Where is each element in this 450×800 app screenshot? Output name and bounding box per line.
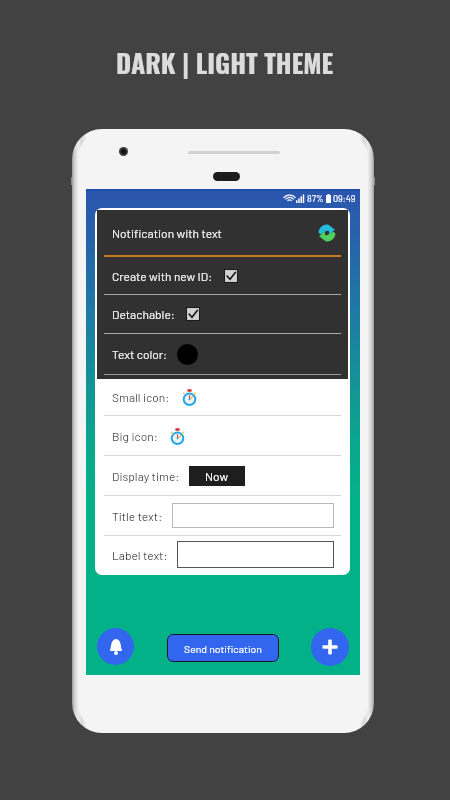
button[interactable]: Send notification [167,634,279,662]
staticText: Display time: [112,469,180,483]
staticText: 09:49 [333,193,356,204]
button[interactable]: Text color: [97,334,348,374]
button[interactable]: Small icon: [97,379,348,415]
staticText: Text color: [112,347,168,361]
button[interactable]: Pick big icon [167,426,187,446]
staticText: Send notification [184,642,262,655]
button[interactable]: Detachable: [97,295,348,333]
button[interactable]: Toggle [184,305,202,323]
button[interactable]: Display time: [97,456,348,495]
staticText: Detachable: [112,307,175,321]
button[interactable]: Pick small icon [179,387,199,407]
staticText: Now [205,469,229,483]
staticText: 87% [307,193,324,204]
button[interactable]: Create with new ID: [97,257,348,294]
staticText: Notification with text [112,226,222,240]
button[interactable]: Big icon: [97,416,348,455]
button[interactable]: Add [311,628,349,666]
button[interactable]: Label text: [97,536,348,573]
staticText: Small icon: [112,390,170,404]
button[interactable] [177,541,334,568]
staticText: Label text: [112,548,168,562]
button[interactable] [172,503,334,528]
staticText: DARK | LIGHT THEME [116,43,334,82]
button[interactable]: Title text: [97,496,348,535]
staticText: Big icon: [112,429,158,443]
staticText: Title text: [112,509,163,523]
button[interactable]: Now [189,466,245,486]
button[interactable]: Toggle [222,267,240,285]
button[interactable]: Notification [97,628,134,665]
button[interactable]: Switch theme [316,222,338,244]
staticText: Create with new ID: [112,269,213,283]
